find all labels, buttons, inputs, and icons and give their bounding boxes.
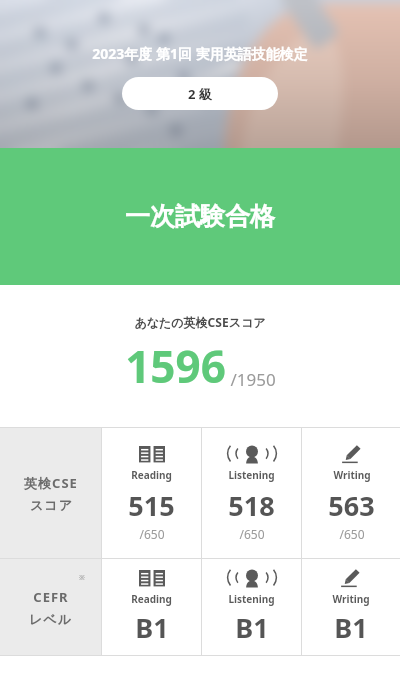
other: Reading xyxy=(139,444,165,464)
other: Writing xyxy=(339,444,365,464)
staticText: あなたの英検CSEスコア xyxy=(134,314,266,330)
staticText: 英検CSE xyxy=(24,474,78,492)
staticText: スコア xyxy=(30,497,73,513)
button[interactable]: Reading xyxy=(102,559,201,655)
staticText: /1950 xyxy=(230,368,276,391)
staticText: /650 xyxy=(239,526,265,542)
button[interactable]: CEFR xyxy=(0,559,101,655)
staticText: Reading xyxy=(131,592,172,606)
staticText: 563 xyxy=(328,487,375,524)
staticText: /650 xyxy=(139,526,165,542)
button[interactable]: 英検CSE xyxy=(0,428,101,558)
button[interactable]: Reading xyxy=(102,428,201,558)
staticText: Listening xyxy=(228,468,275,482)
staticText: Reading xyxy=(131,468,172,482)
staticText: 515 xyxy=(128,487,175,524)
other: Listening xyxy=(239,568,265,588)
staticText: CEFR xyxy=(33,588,69,606)
staticText: Listening xyxy=(228,592,275,606)
staticText: 2 級 xyxy=(188,85,212,103)
other: Listening xyxy=(239,444,265,464)
staticText: B1 xyxy=(334,609,368,646)
staticText: Writing xyxy=(332,592,370,606)
button[interactable]: 2 級 xyxy=(122,77,278,110)
other: Reading xyxy=(139,568,165,588)
button[interactable]: Writing xyxy=(302,428,400,558)
staticText: Writing xyxy=(333,468,371,482)
button[interactable]: Listening xyxy=(202,428,301,558)
staticText: レベル xyxy=(29,611,72,627)
staticText: 518 xyxy=(228,487,275,524)
staticText: /650 xyxy=(339,526,365,542)
other: Writing xyxy=(338,568,364,588)
staticText: ※ xyxy=(79,573,85,583)
staticText: 1596 xyxy=(125,336,226,396)
button[interactable]: Listening xyxy=(202,559,301,655)
staticText: B1 xyxy=(235,609,269,646)
button[interactable]: Writing xyxy=(302,559,400,655)
staticText: 2023年度 第1回 実用英語技能検定 xyxy=(92,44,308,63)
staticText: B1 xyxy=(135,609,169,646)
staticText: 一次試験合格 xyxy=(125,201,275,232)
